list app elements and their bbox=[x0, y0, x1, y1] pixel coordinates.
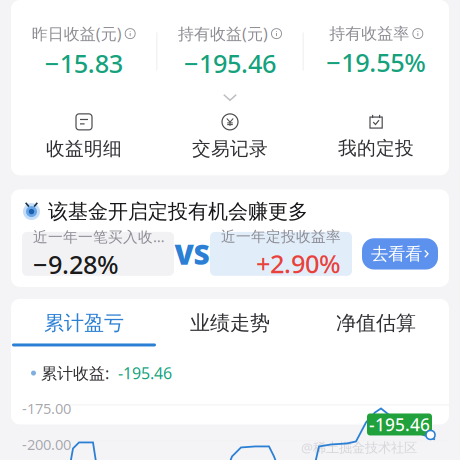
staticText: −19.55% bbox=[326, 45, 426, 79]
staticText: 持有收益(元) bbox=[178, 23, 268, 44]
button[interactable]: 业绩走势 bbox=[157, 311, 303, 346]
staticText: 累计收益: bbox=[41, 362, 113, 384]
staticText: VS bbox=[174, 235, 209, 272]
button[interactable]: 交易记录 bbox=[157, 109, 303, 164]
button[interactable]: 净值估算 bbox=[303, 311, 449, 346]
staticText: -195.46 bbox=[118, 362, 172, 384]
button[interactable]: 收益明细 bbox=[11, 109, 157, 164]
staticText: −195.46 bbox=[184, 46, 276, 80]
staticText: 净值估算 bbox=[336, 311, 416, 335]
staticText: 近一年一笔买入收… bbox=[33, 227, 165, 246]
staticText: -200.00 bbox=[22, 434, 71, 454]
staticText: 我的定投 bbox=[338, 137, 414, 160]
staticText: 昨日收益(元) bbox=[32, 23, 122, 44]
staticText: 交易记录 bbox=[192, 137, 268, 160]
staticText: -195.46 bbox=[369, 413, 430, 436]
button[interactable]: 该基金开启定投有机会赚更多 bbox=[11, 189, 449, 287]
button[interactable]: 累计盈亏 bbox=[11, 311, 157, 346]
button[interactable]: 我的定投 bbox=[303, 110, 449, 164]
staticText: 收益明细 bbox=[46, 137, 122, 160]
staticText: 该基金开启定投有机会赚更多 bbox=[48, 199, 308, 224]
staticText: 持有收益率 bbox=[329, 24, 409, 43]
staticText: @稀土掘金技术社区 bbox=[301, 438, 417, 456]
staticText: -175.00 bbox=[22, 398, 71, 418]
staticText: 累计盈亏 bbox=[44, 311, 124, 335]
staticText: −9.28% bbox=[33, 247, 119, 281]
staticText: −15.83 bbox=[45, 46, 123, 80]
staticText: 去看看 bbox=[371, 243, 422, 264]
staticText: 业绩走势 bbox=[190, 311, 270, 335]
staticText: +2.90% bbox=[256, 247, 341, 280]
staticText: 近一年定投收益率 bbox=[221, 228, 341, 246]
